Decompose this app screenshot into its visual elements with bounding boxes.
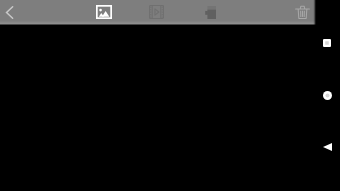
button[interactable]: Delete <box>290 0 315 24</box>
button[interactable]: Back <box>0 0 18 24</box>
button[interactable]: Images <box>88 0 120 24</box>
button[interactable]: Back <box>314 134 340 160</box>
button[interactable]: Documents <box>194 0 226 24</box>
button[interactable]: Home <box>314 82 340 108</box>
button[interactable]: Videos <box>140 0 172 24</box>
button[interactable]: Recent apps <box>314 30 340 56</box>
